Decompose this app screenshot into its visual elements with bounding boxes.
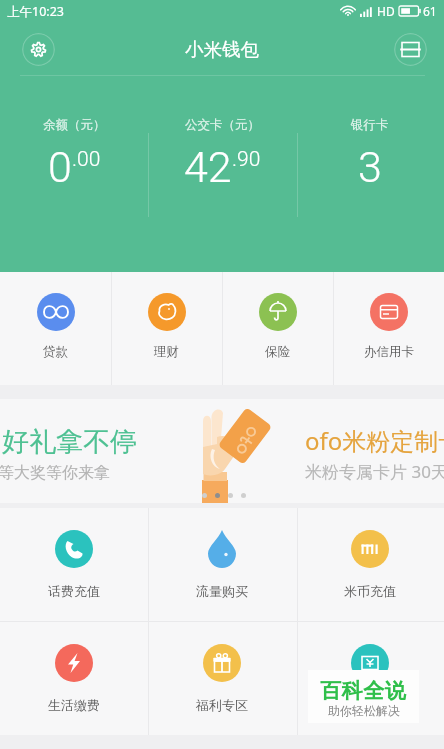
staticText: .90 <box>232 147 261 172</box>
staticText: 流量购买 <box>196 583 248 599</box>
button[interactable]: 贷款 <box>0 272 111 385</box>
staticText: 银行卡 <box>351 117 389 133</box>
staticText: 贷款 <box>43 344 68 360</box>
button[interactable]: My cards <box>394 33 427 66</box>
staticText: HD <box>377 3 395 19</box>
staticText: 生活缴费 <box>48 697 100 713</box>
button[interactable]: 米币充值 <box>296 508 444 621</box>
staticText: 理财 <box>154 344 179 360</box>
staticText: 61 <box>423 3 437 19</box>
button[interactable]: 余额（元） <box>0 0 148 272</box>
button[interactable]: Settings <box>22 33 55 66</box>
staticText: 百科全说 <box>320 678 407 704</box>
staticText: 福利专区 <box>196 697 248 713</box>
staticText: 等大奖等你来拿 <box>0 463 110 483</box>
button[interactable]: 生活缴费 <box>0 622 148 735</box>
button[interactable]: 流量购买 <box>148 508 296 621</box>
button[interactable]: 话费充值 <box>0 508 148 621</box>
staticText: 米币充值 <box>344 583 396 599</box>
button[interactable]: 理财 <box>111 272 222 385</box>
button[interactable]: 好礼拿不停 <box>0 399 444 503</box>
button[interactable]: 银行卡 <box>296 0 444 272</box>
staticText: 3 <box>358 142 382 192</box>
staticText: 话费充值 <box>48 583 100 599</box>
staticText: 上午10:23 <box>7 3 64 20</box>
button[interactable]: 办信用卡 <box>333 272 444 385</box>
staticText: ofo米粉定制卡 <box>305 424 444 457</box>
button[interactable]: 保险 <box>222 272 333 385</box>
button[interactable]: 公交卡（元） <box>148 0 296 272</box>
staticText: 公交卡（元） <box>185 117 260 133</box>
staticText: 保险 <box>265 344 290 360</box>
staticText: 米粉专属卡片 30天免 <box>305 460 444 483</box>
staticText: 0 <box>48 142 72 192</box>
staticText: 42 <box>184 142 232 192</box>
staticText: 助你轻松解决 <box>328 703 400 718</box>
button[interactable] <box>296 622 444 735</box>
staticText: 余额（元） <box>43 117 106 133</box>
staticText: 好礼拿不停 <box>2 425 137 459</box>
button[interactable]: 福利专区 <box>148 622 296 735</box>
staticText: 办信用卡 <box>364 344 414 360</box>
staticText: .00 <box>72 147 101 172</box>
staticText: 小米钱包 <box>185 38 259 61</box>
